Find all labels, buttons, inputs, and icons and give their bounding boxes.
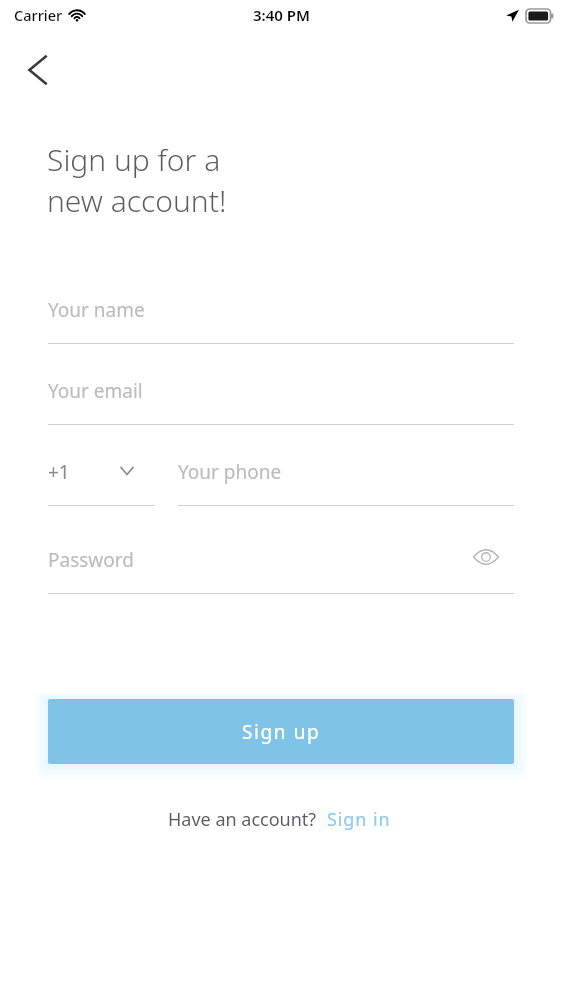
button[interactable]: Your email [48, 378, 514, 424]
button[interactable]: Show password [464, 535, 508, 579]
button[interactable]: Your phone [178, 459, 514, 505]
staticText: Have an account? [168, 807, 317, 832]
staticText: Your phone [178, 459, 282, 485]
staticText: Password [48, 547, 134, 573]
staticText: new account! [47, 180, 227, 221]
button[interactable]: Sign up [48, 699, 514, 764]
staticText: Sign up for a [47, 139, 221, 180]
button[interactable]: Password [48, 547, 514, 593]
staticText: Carrier [14, 5, 63, 25]
staticText: +1 [48, 459, 70, 485]
button[interactable]: Your name [48, 297, 514, 343]
button[interactable]: Back [16, 48, 60, 92]
button[interactable]: Sign in [317, 802, 396, 837]
staticText: Sign in [327, 807, 391, 832]
staticText: Your name [48, 297, 145, 323]
staticText: Sign up [242, 719, 321, 745]
staticText: Your email [48, 378, 143, 404]
button[interactable]: Country code +1 [48, 459, 155, 505]
staticText: 3:40 PM [253, 5, 310, 25]
